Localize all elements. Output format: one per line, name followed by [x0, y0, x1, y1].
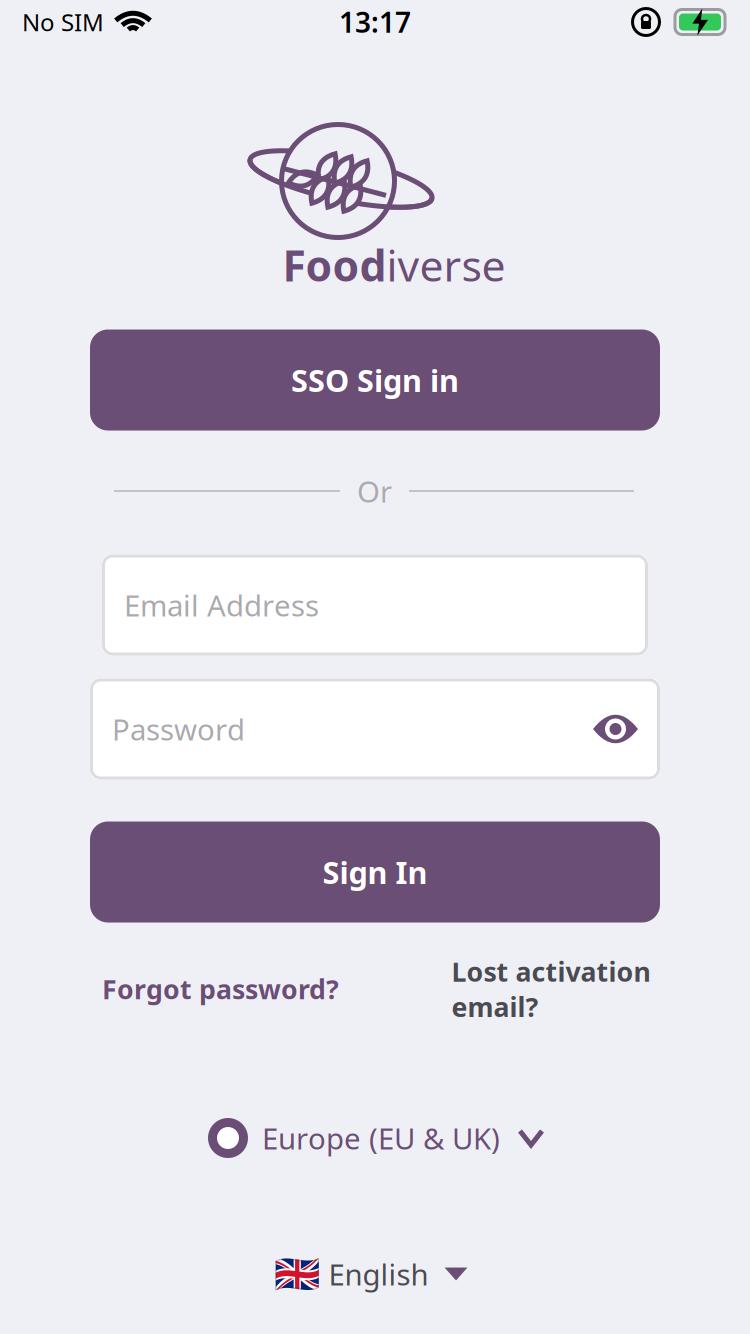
- staticText: English: [328, 1254, 428, 1293]
- staticText: Sign In: [322, 852, 427, 892]
- staticText: 13:17: [339, 3, 411, 41]
- staticText: 🇬🇧: [273, 1253, 319, 1295]
- staticText: Email Address: [124, 585, 319, 624]
- button[interactable]: Forgot password?: [102, 967, 352, 1011]
- staticText: Forgot password?: [102, 971, 339, 1007]
- staticText: SSO Sign in: [291, 360, 459, 400]
- button[interactable]: 🇬🇧: [282, 1254, 467, 1293]
- button[interactable]: Sign In: [90, 821, 660, 922]
- staticText: Or: [357, 471, 392, 510]
- staticText: Europe (EU & UK): [262, 1118, 500, 1157]
- staticText: Food: [282, 237, 386, 293]
- staticText: Lost activation email?: [451, 954, 650, 1024]
- button[interactable]: Europe (EU & UK): [208, 1118, 542, 1158]
- button[interactable]: Lost activation email?: [445, 954, 650, 1024]
- staticText: iverse: [386, 237, 505, 293]
- button[interactable]: SSO Sign in: [90, 329, 660, 430]
- staticText: No SIM: [22, 6, 104, 38]
- staticText: Password: [112, 709, 245, 748]
